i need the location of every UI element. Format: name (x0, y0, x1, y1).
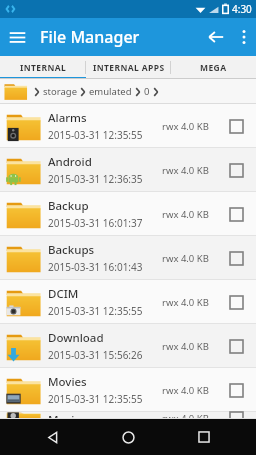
staticText: Download (48, 330, 104, 346)
staticText: INTERNAL (20, 62, 67, 74)
staticText: Alarms (48, 110, 87, 126)
button[interactable]: Open navigation drawer (0, 18, 34, 56)
staticText: rwx 4.0 KB (162, 296, 209, 309)
staticText: Movies (48, 374, 87, 390)
button[interactable]: Back (200, 18, 232, 56)
staticText: 2015-03-31 12:36:35 (48, 172, 143, 186)
button[interactable]: Music (0, 412, 256, 419)
button[interactable]: Movies (0, 368, 256, 412)
staticText: rwx 4.0 KB (162, 340, 209, 353)
button[interactable]: Select Alarms (224, 114, 248, 138)
staticText: INTERNAL APPS (93, 62, 165, 74)
staticText: storage (43, 85, 77, 98)
staticText: 2015-03-31 12:35:55 (48, 128, 143, 142)
button[interactable]: Select DCIM (224, 290, 248, 314)
button[interactable]: More options (232, 18, 256, 56)
button[interactable]: Select Movies (224, 378, 248, 402)
button[interactable]: Select Android (224, 158, 248, 182)
button[interactable]: Select Download (224, 334, 248, 358)
staticText: rwx 4.0 KB (162, 384, 209, 397)
staticText: 2015-03-31 12:35:55 (48, 392, 143, 406)
staticText: rwx 4.0 KB (162, 252, 209, 265)
staticText: rwx 4.0 KB (162, 208, 209, 221)
button[interactable]: emulated (89, 85, 132, 98)
staticText: DCIM (48, 286, 79, 302)
staticText: rwx 4.0 KB (162, 120, 209, 133)
staticText: Music (48, 412, 81, 419)
button[interactable]: INTERNAL APPS (86, 56, 171, 79)
button[interactable]: DCIM (0, 280, 256, 324)
staticText: 4:30 (232, 2, 252, 16)
staticText: MEGA (200, 62, 227, 74)
staticText: rwx 4.0 KB (162, 164, 209, 177)
button[interactable]: Back (30, 419, 76, 455)
staticText: emulated (89, 85, 132, 98)
staticText: 2015-03-31 12:35:55 (48, 304, 143, 318)
button[interactable]: Recent apps (181, 419, 227, 455)
staticText: 2015-03-31 16:01:37 (48, 216, 143, 230)
button[interactable]: storage (43, 85, 77, 98)
button[interactable]: Home (105, 419, 151, 455)
staticText: 0 (144, 85, 150, 98)
button[interactable]: Backups (0, 236, 256, 280)
staticText: Backups (48, 242, 95, 258)
button[interactable]: Select Music (224, 412, 248, 419)
staticText: Android (48, 154, 92, 170)
staticText: File Manager (40, 26, 140, 48)
button[interactable]: Root folder (4, 82, 28, 101)
staticText: 2015-03-31 16:01:43 (48, 260, 143, 274)
button[interactable]: Android (0, 148, 256, 192)
button[interactable]: Download (0, 324, 256, 368)
staticText: Backup (48, 198, 89, 214)
button[interactable]: 0 (144, 85, 150, 98)
button[interactable]: Select Backup (224, 202, 248, 226)
button[interactable]: Select Backups (224, 246, 248, 270)
button[interactable]: Alarms (0, 104, 256, 148)
staticText: rwx 4.0 KB (162, 412, 209, 419)
button[interactable]: MEGA (171, 56, 256, 79)
staticText: 2015-03-31 15:56:26 (48, 348, 143, 362)
button[interactable]: INTERNAL (0, 56, 86, 79)
button[interactable]: Backup (0, 192, 256, 236)
